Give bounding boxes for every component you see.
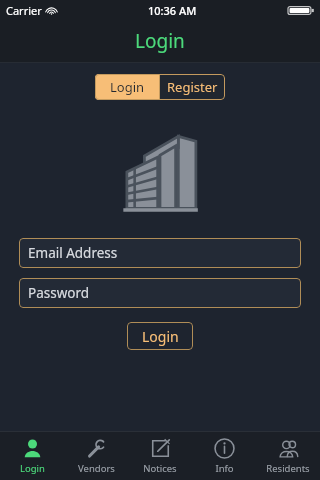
button[interactable]: Info [192,432,256,480]
staticText: Login [20,462,45,475]
staticText: 10:36 AM [148,3,197,18]
staticText: Vendors [78,462,115,475]
button[interactable]: Residents [256,432,320,480]
staticText: Carrier [6,3,42,18]
button[interactable]: Register [160,74,225,100]
staticText: Register [167,78,218,96]
staticText: Email Address [28,244,118,262]
staticText: Notices [143,462,177,475]
button[interactable]: Login [95,74,159,100]
button[interactable]: Password [19,278,301,308]
staticText: Login [142,327,179,346]
staticText: Residents [266,462,310,475]
button[interactable]: Login [0,432,64,480]
staticText: Login [135,28,185,54]
button[interactable]: Login [127,322,193,350]
button[interactable]: Vendors [64,432,128,480]
staticText: Password [28,284,90,302]
staticText: Info [215,462,234,475]
button[interactable]: Email Address [19,238,301,268]
staticText: Login [110,78,145,96]
button[interactable]: Notices [128,432,192,480]
